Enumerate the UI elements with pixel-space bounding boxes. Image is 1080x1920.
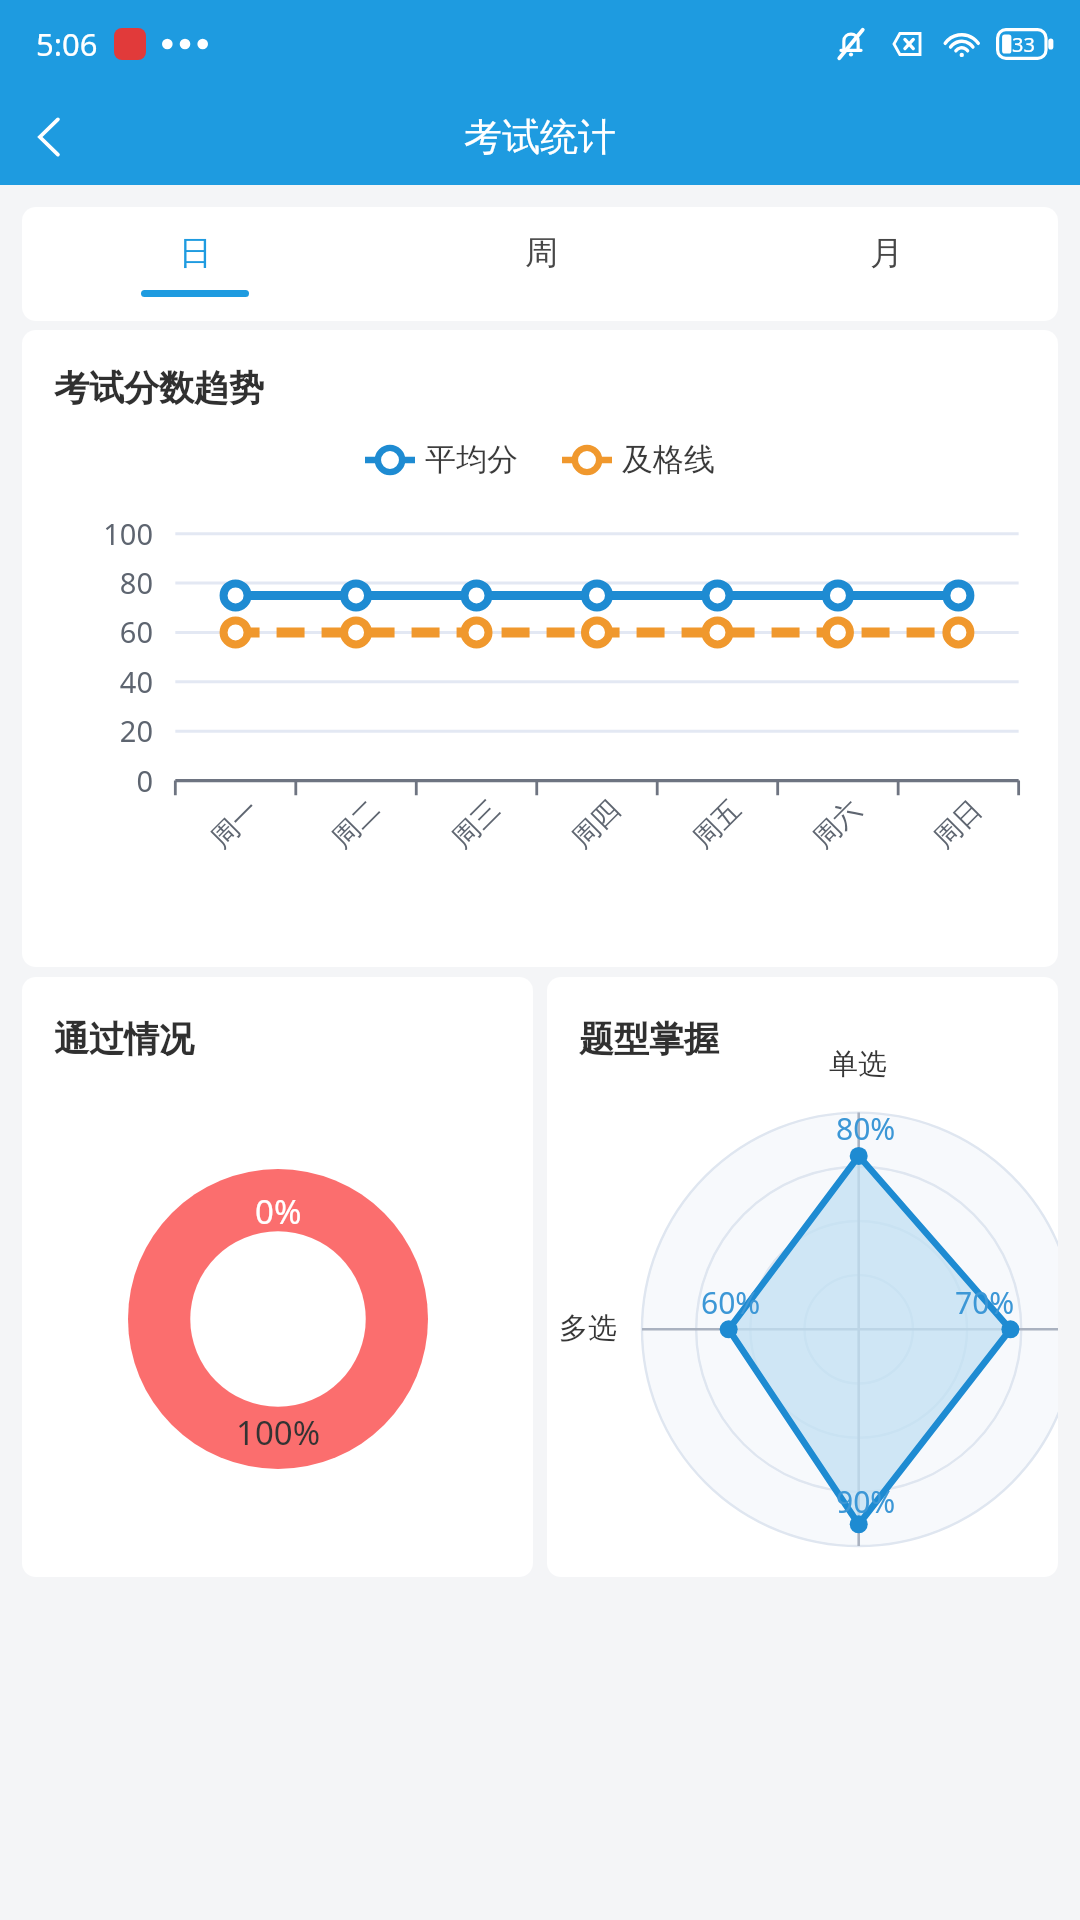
staticText: 20 <box>119 711 153 750</box>
staticText: 周四 <box>565 793 627 855</box>
button[interactable]: 周 <box>368 207 713 321</box>
staticText: 40 <box>119 662 153 701</box>
staticText: 80% <box>836 1108 896 1149</box>
staticText: 60 <box>119 612 153 651</box>
staticText: 考试分数趋势 <box>54 366 264 410</box>
staticText: 33 <box>1012 31 1035 58</box>
staticText: 月 <box>870 232 903 274</box>
staticText: 周三 <box>445 793 507 855</box>
staticText: 考试统计 <box>464 113 616 161</box>
staticText: 周二 <box>325 793 387 855</box>
staticText: 80 <box>119 563 153 602</box>
button[interactable]: 通过情况 <box>22 977 533 1577</box>
staticText: 题型掌握 <box>579 1017 719 1061</box>
staticText: 0% <box>255 1189 302 1234</box>
staticText: 周五 <box>686 793 748 855</box>
staticText: 100% <box>236 1410 321 1455</box>
staticText: 100 <box>103 514 153 553</box>
button[interactable]: 题型掌握 <box>547 977 1058 1577</box>
staticText: 日 <box>179 232 212 274</box>
staticText: 单选 <box>829 1046 887 1083</box>
staticText: 70% <box>955 1282 1015 1323</box>
staticText: 周 <box>525 232 558 274</box>
button[interactable]: 月 <box>713 207 1058 321</box>
button[interactable]: 日 <box>22 207 368 321</box>
staticText: 5:06 <box>36 23 98 65</box>
staticText: 平均分 <box>425 440 518 479</box>
staticText: 周一 <box>204 793 266 855</box>
button[interactable]: Back <box>12 99 88 175</box>
staticText: 0 <box>136 761 153 800</box>
staticText: 周日 <box>927 793 989 855</box>
staticText: 及格线 <box>622 440 715 479</box>
staticText: 通过情况 <box>54 1017 194 1061</box>
staticText: 周六 <box>806 793 868 855</box>
staticText: 90% <box>836 1481 896 1522</box>
staticText: 多选 <box>559 1310 617 1347</box>
staticText: 60% <box>701 1282 761 1323</box>
